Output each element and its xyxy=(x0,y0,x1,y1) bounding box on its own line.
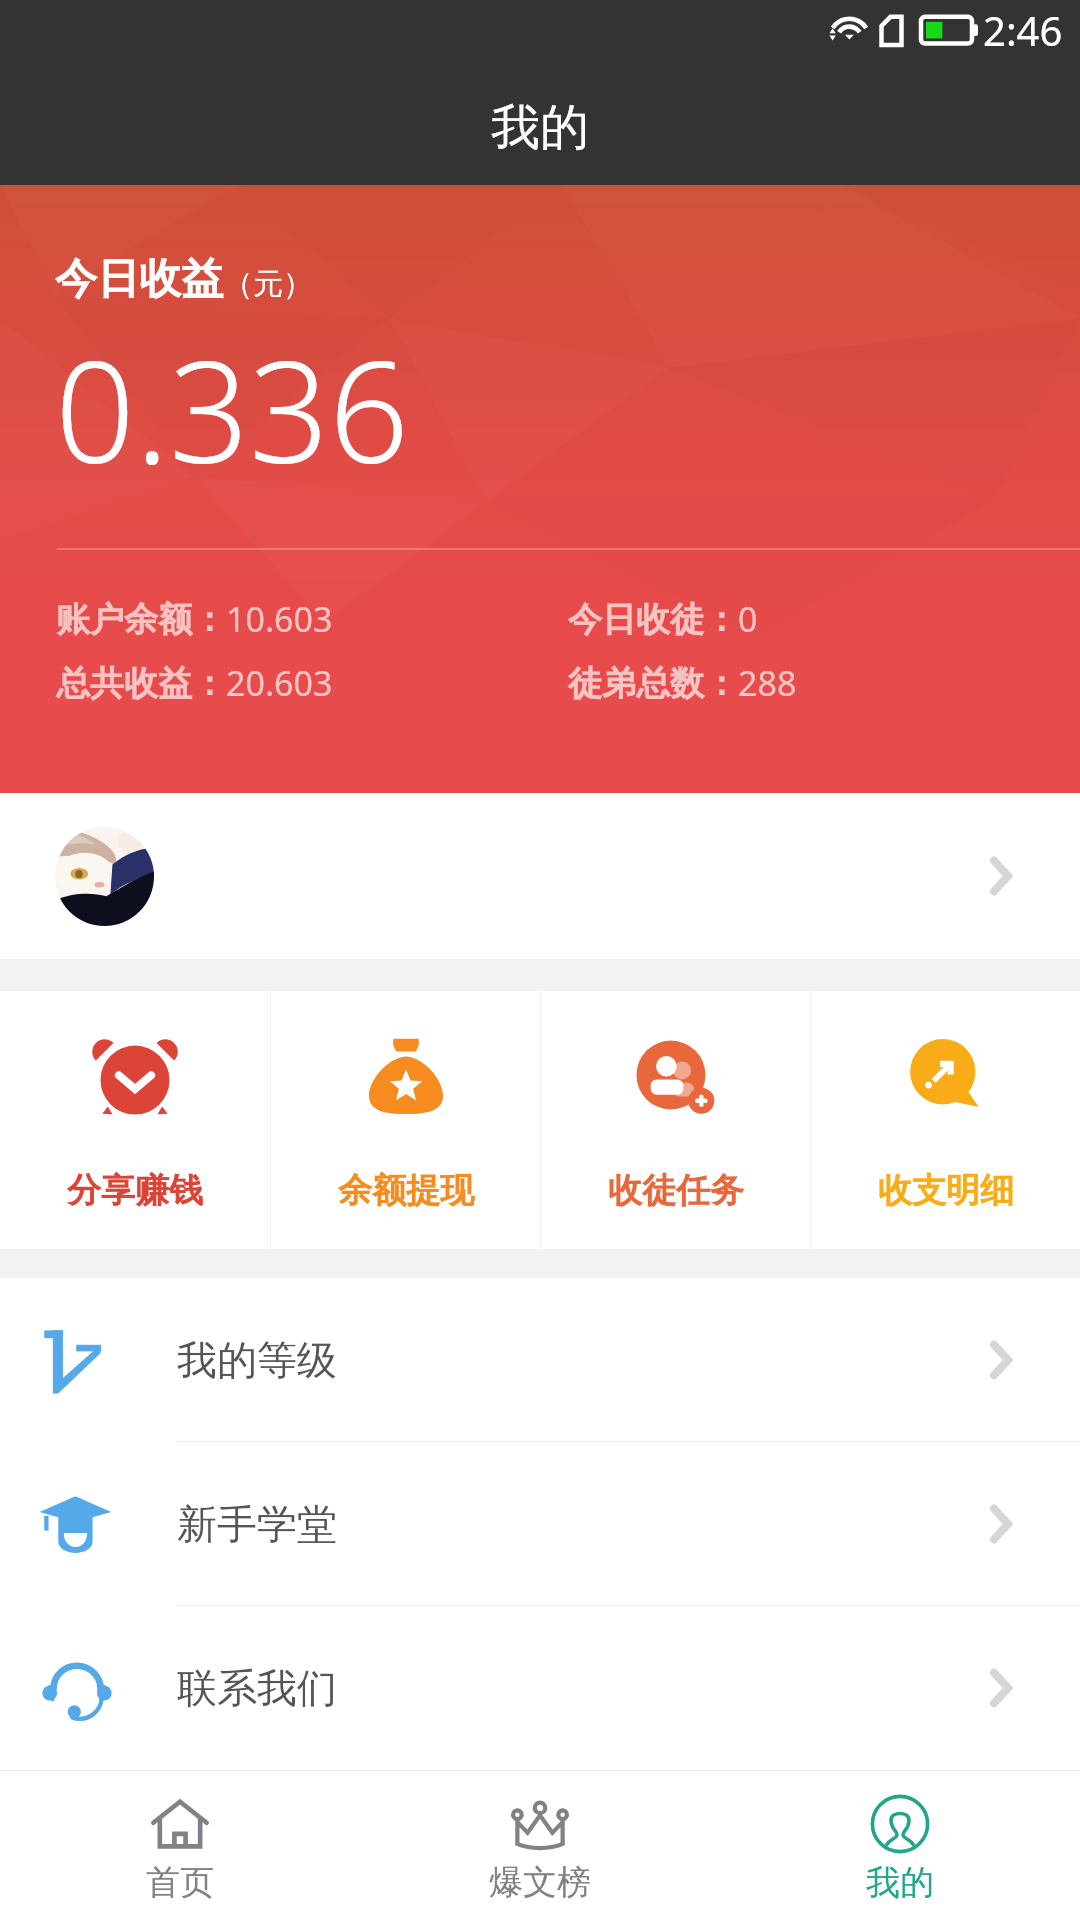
staticText: 爆文榜 xyxy=(489,1861,591,1904)
button[interactable]: 余额提现 xyxy=(271,991,540,1249)
button[interactable]: 我的等级 xyxy=(0,1278,1080,1441)
staticText: 徒弟总数： xyxy=(568,662,738,705)
staticText: 10.603 xyxy=(226,596,333,642)
button[interactable] xyxy=(0,793,1080,959)
staticText: 首页 xyxy=(146,1861,214,1904)
staticText: 余额提现 xyxy=(338,1169,474,1212)
button[interactable]: 首页 xyxy=(0,1771,360,1920)
staticText: 联系我们 xyxy=(177,1663,337,1713)
button[interactable]: 新手学堂 xyxy=(0,1442,1080,1605)
staticText: 今日收徒： xyxy=(568,598,738,641)
staticText: 我的 xyxy=(491,97,589,159)
staticText: 分享赚钱 xyxy=(67,1169,203,1212)
button[interactable]: 我的 xyxy=(720,1771,1080,1920)
staticText: （元） xyxy=(223,265,313,303)
staticText: 新手学堂 xyxy=(177,1499,337,1549)
staticText: 收支明细 xyxy=(878,1169,1014,1212)
staticText: 我的 xyxy=(866,1861,934,1904)
staticText: 收徒任务 xyxy=(608,1169,744,1212)
button[interactable]: 联系我们 xyxy=(0,1606,1080,1769)
staticText: 0 xyxy=(738,596,758,642)
button[interactable]: 收支明细 xyxy=(811,991,1080,1249)
staticText: 288 xyxy=(738,660,797,706)
staticText: 2:46 xyxy=(983,3,1063,57)
staticText: 20.603 xyxy=(226,660,333,706)
staticText: 总共收益： xyxy=(56,662,226,705)
staticText: 0.336 xyxy=(55,313,409,504)
staticText: 我的等级 xyxy=(177,1335,337,1385)
button[interactable]: 收徒任务 xyxy=(541,991,810,1249)
button[interactable]: 分享赚钱 xyxy=(0,991,270,1249)
staticText: 今日收益 xyxy=(55,253,223,306)
button[interactable]: 爆文榜 xyxy=(360,1771,720,1920)
staticText: 账户余额： xyxy=(56,598,226,641)
